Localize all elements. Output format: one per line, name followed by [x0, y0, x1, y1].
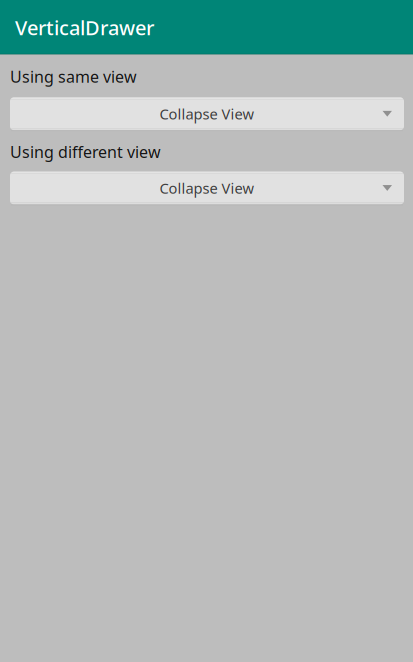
- staticText: Collapse View: [159, 104, 254, 123]
- staticText: Collapse View: [159, 178, 254, 198]
- staticText: Using different view: [10, 141, 161, 162]
- button[interactable]: Collapse View: [10, 97, 404, 130]
- button[interactable]: Collapse View: [10, 171, 404, 204]
- staticText: Using same view: [10, 66, 137, 87]
- staticText: VerticalDrawer: [15, 14, 154, 41]
